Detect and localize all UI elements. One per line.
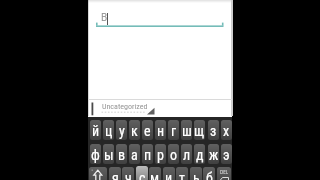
staticText: э [223, 147, 230, 163]
staticText: м [150, 170, 160, 180]
staticText: с [139, 170, 146, 180]
staticText: ь [193, 170, 200, 180]
button[interactable]: ж [208, 144, 219, 164]
staticText: г [171, 123, 177, 139]
button[interactable]: м [149, 167, 161, 180]
button[interactable]: э [221, 144, 232, 164]
staticText: ш [182, 123, 192, 139]
button[interactable]: г [168, 120, 179, 140]
staticText: ы [104, 147, 114, 163]
button[interactable] [89, 167, 107, 180]
staticText: й [92, 123, 100, 139]
staticText: л [183, 147, 191, 163]
staticText: х [223, 123, 230, 139]
staticText: ц [105, 123, 113, 139]
button[interactable]: а [129, 144, 140, 164]
staticText: Uncategorized [102, 102, 148, 111]
button[interactable]: б [203, 167, 215, 180]
button[interactable]: Uncategorized [90, 99, 230, 116]
button[interactable]: у [116, 120, 127, 140]
staticText: т [179, 170, 185, 180]
button[interactable]: в [116, 144, 127, 164]
staticText: н [157, 123, 165, 139]
button[interactable]: B [96, 6, 224, 26]
staticText: б [206, 170, 213, 180]
staticText: ж [209, 147, 219, 163]
button[interactable]: р [155, 144, 166, 164]
staticText: B [101, 12, 108, 24]
button[interactable]: з [208, 120, 219, 140]
button[interactable]: ь [190, 167, 202, 180]
button[interactable]: ы [103, 144, 114, 164]
staticText: д [196, 147, 204, 163]
button[interactable]: ш [181, 120, 192, 140]
staticText: DEL [220, 169, 229, 175]
staticText: в [118, 147, 126, 163]
staticText: о [170, 147, 178, 163]
button[interactable]: и [163, 167, 175, 180]
button[interactable]: ц [103, 120, 114, 140]
staticText: ч [125, 170, 132, 180]
button[interactable]: й [90, 120, 101, 140]
staticText: я [112, 170, 119, 180]
button[interactable]: д [194, 144, 205, 164]
staticText: щ [194, 123, 205, 139]
staticText: у [119, 123, 125, 139]
button[interactable]: л [181, 144, 192, 164]
button[interactable]: о [168, 144, 179, 164]
button[interactable]: с [136, 166, 148, 180]
button[interactable]: х [221, 120, 232, 140]
staticText: з [210, 123, 217, 139]
button[interactable]: п [142, 144, 153, 164]
button[interactable]: т [176, 167, 188, 180]
button[interactable]: я [109, 167, 121, 180]
staticText: п [144, 147, 152, 163]
staticText: а [131, 147, 138, 163]
button[interactable]: н [155, 120, 166, 140]
staticText: и [165, 170, 173, 180]
button[interactable]: ч [122, 167, 134, 180]
staticText: ф [91, 147, 100, 163]
staticText: е [144, 123, 151, 139]
staticText: р [157, 147, 164, 163]
staticText: к [131, 123, 138, 139]
button[interactable]: DEL [217, 167, 231, 180]
button[interactable]: е [142, 120, 153, 140]
button[interactable]: щ [194, 120, 205, 140]
button[interactable]: ф [90, 144, 101, 164]
button[interactable]: к [129, 120, 140, 140]
